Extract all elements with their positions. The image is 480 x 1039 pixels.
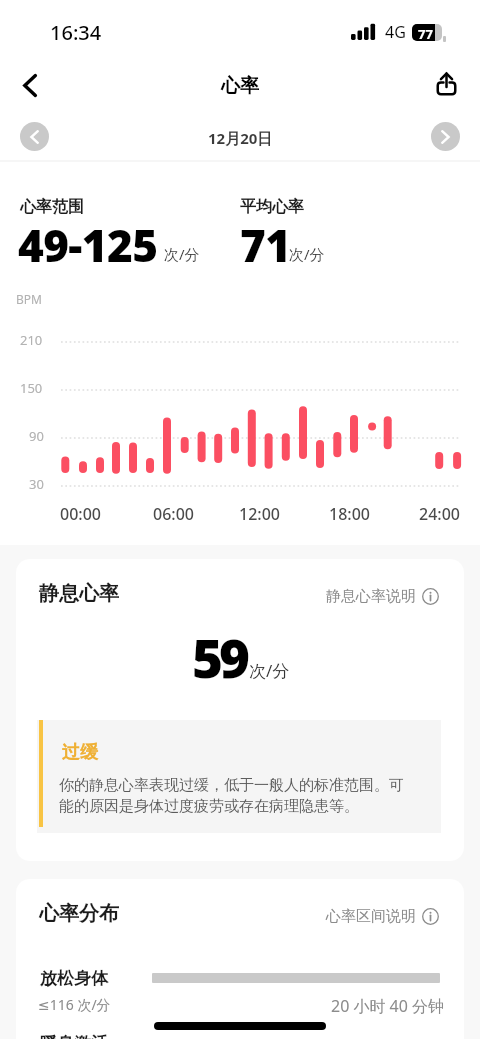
staticText: 次/分 xyxy=(289,244,325,264)
staticText: BPM xyxy=(16,291,42,307)
staticText: 心率分布 xyxy=(39,901,119,926)
staticText: 24:00 xyxy=(419,503,460,525)
staticText: 平均心率 xyxy=(240,197,304,217)
staticText: ≤116 次/分 xyxy=(38,995,111,1014)
staticText: 49-125 xyxy=(18,215,158,275)
staticText: 150 xyxy=(20,379,43,397)
staticText: 静息心率 xyxy=(39,581,119,606)
staticText: 次/分 xyxy=(164,244,200,264)
staticText: 12:00 xyxy=(239,503,280,525)
staticText: 16:34 xyxy=(50,19,102,46)
staticText: 71 xyxy=(240,215,291,275)
staticText: 过缓 xyxy=(62,741,98,764)
button[interactable]: Share xyxy=(422,60,470,108)
staticText: 77 xyxy=(418,25,433,42)
staticText: 12月20日 xyxy=(208,128,273,148)
staticText: 00:00 xyxy=(60,503,101,525)
staticText: 暖身激活 xyxy=(40,1033,108,1039)
staticText: 心率范围 xyxy=(20,197,84,217)
staticText: 06:00 xyxy=(153,503,194,525)
staticText: 次/分 xyxy=(249,659,290,682)
staticText: 放松身体 xyxy=(40,968,108,989)
staticText: 你的静息心率表现过缓，低于一般人的标准范围。可能的原因是身体过度疲劳或存在病理隐… xyxy=(59,776,407,816)
button[interactable]: Back xyxy=(6,61,54,109)
button[interactable]: Previous day xyxy=(20,122,49,151)
staticText: 59 xyxy=(192,621,247,693)
staticText: 心率 xyxy=(221,74,259,98)
staticText: 90 xyxy=(29,427,44,445)
staticText: 30 xyxy=(29,475,44,493)
button[interactable]: 静息心率 xyxy=(16,559,464,861)
staticText: 210 xyxy=(20,331,43,349)
staticText: 20 小时 40 分钟 xyxy=(331,995,445,1017)
staticText: 静息心率说明 xyxy=(326,587,416,606)
staticText: 心率区间说明 xyxy=(326,907,416,926)
button[interactable]: Next day xyxy=(431,122,460,151)
staticText: 18:00 xyxy=(329,503,370,525)
staticText: 4G xyxy=(385,21,406,43)
